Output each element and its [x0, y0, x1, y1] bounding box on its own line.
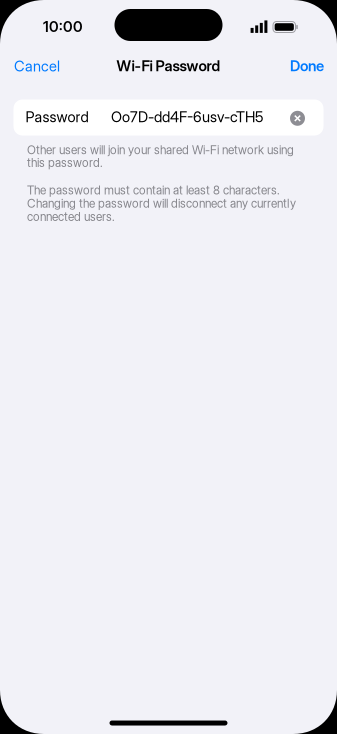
staticText: Cancel: [14, 57, 60, 75]
staticText: Changing the password will disconnect an…: [27, 196, 296, 211]
button[interactable]: Cancel: [14, 57, 60, 75]
staticText: The password must contain at least 8 cha…: [27, 183, 280, 197]
staticText: Oo7D-dd4F-6usv-cTH5: [111, 108, 263, 126]
staticText: Other users will join your shared Wi-Fi …: [27, 143, 294, 157]
staticText: Done: [290, 57, 324, 75]
button[interactable]: Done: [290, 57, 324, 75]
staticText: 10:00: [43, 17, 83, 36]
button[interactable]: [290, 111, 305, 126]
staticText: this password.: [27, 155, 103, 170]
staticText: Password: [25, 108, 88, 126]
staticText: connected users.: [27, 209, 115, 224]
staticText: Wi-Fi Password: [116, 57, 220, 75]
